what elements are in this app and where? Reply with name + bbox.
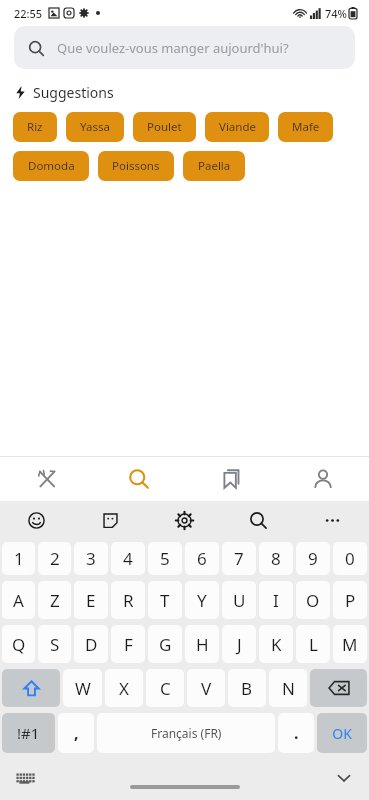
staticText: O	[306, 589, 320, 612]
button[interactable]: Search keyboard	[221, 501, 295, 539]
button[interactable]: Profile	[277, 457, 369, 501]
button[interactable]: Shift	[2, 669, 60, 707]
button[interactable]: !#1	[2, 713, 55, 753]
button[interactable]: 7	[222, 542, 256, 575]
staticText: W	[75, 677, 91, 700]
button[interactable]: OK	[317, 713, 367, 753]
button[interactable]: Domoda	[13, 151, 89, 181]
button[interactable]: D	[74, 625, 108, 663]
staticText: H	[196, 633, 209, 656]
staticText: L	[309, 633, 318, 656]
staticText: A	[13, 589, 24, 612]
staticText: OK	[332, 724, 352, 743]
button[interactable]: .	[278, 713, 314, 753]
staticText: 74%	[325, 6, 347, 21]
button[interactable]: ,	[58, 713, 94, 753]
button[interactable]: P	[333, 581, 367, 619]
staticText: 2	[50, 547, 60, 570]
staticText: U	[233, 589, 246, 612]
staticText: D	[85, 633, 98, 656]
button[interactable]: N	[269, 669, 307, 707]
staticText: N	[282, 677, 295, 700]
staticText: S	[50, 633, 60, 656]
staticText: 6	[197, 547, 207, 570]
button[interactable]: B	[228, 669, 266, 707]
button[interactable]: Viande	[205, 112, 269, 142]
button[interactable]: Z	[38, 581, 71, 619]
button[interactable]: 3	[74, 542, 108, 575]
button[interactable]: Yassa	[66, 112, 124, 142]
button[interactable]: 2	[38, 542, 71, 575]
button[interactable]: Settings	[147, 501, 221, 539]
staticText: E	[86, 589, 96, 612]
button[interactable]: S	[38, 625, 71, 663]
button[interactable]: G	[148, 625, 182, 663]
staticText: 9	[308, 547, 318, 570]
button[interactable]: Restaurants	[0, 457, 93, 501]
button[interactable]: Mafe	[278, 112, 333, 142]
button[interactable]: M	[333, 625, 367, 663]
staticText: Q	[12, 633, 26, 656]
button[interactable]: T	[148, 581, 182, 619]
button[interactable]: I	[259, 581, 293, 619]
button[interactable]: Bookmarks	[185, 457, 277, 501]
button[interactable]: Keyboard layout	[10, 763, 40, 793]
button[interactable]: H	[185, 625, 219, 663]
button[interactable]: Riz	[13, 112, 57, 142]
staticText: Que voulez-vous manger aujourd'hui?	[57, 39, 289, 57]
button[interactable]: Poissons	[98, 151, 174, 181]
button[interactable]: Paella	[183, 151, 245, 181]
button[interactable]: Poulet	[133, 112, 196, 142]
staticText: K	[271, 633, 282, 656]
button[interactable]: Q	[2, 625, 35, 663]
staticText: Y	[197, 589, 207, 612]
button[interactable]: More options	[295, 501, 369, 539]
button[interactable]: F	[111, 625, 145, 663]
staticText: Poissons	[112, 158, 160, 174]
staticText: 0	[345, 547, 355, 570]
staticText: 8	[271, 547, 281, 570]
button[interactable]: O	[296, 581, 330, 619]
staticText: 4	[123, 547, 133, 570]
button[interactable]: X	[105, 669, 143, 707]
button[interactable]: Backspace	[310, 669, 367, 707]
staticText: J	[237, 633, 242, 656]
button[interactable]: 5	[148, 542, 182, 575]
button[interactable]: 6	[185, 542, 219, 575]
staticText: 3	[86, 547, 96, 570]
button[interactable]: V	[187, 669, 225, 707]
staticText: Viande	[219, 119, 256, 135]
button[interactable]: Y	[185, 581, 219, 619]
button[interactable]: A	[2, 581, 35, 619]
staticText: Domoda	[28, 158, 75, 174]
button[interactable]: Emoji	[0, 501, 73, 539]
button[interactable]: Hide keyboard	[329, 763, 359, 793]
staticText: F	[124, 633, 133, 656]
button[interactable]: 9	[296, 542, 330, 575]
staticText: T	[160, 589, 170, 612]
button[interactable]: L	[296, 625, 330, 663]
button[interactable]: Que voulez-vous manger aujourd'hui?	[14, 26, 355, 69]
button[interactable]: W	[63, 669, 102, 707]
button[interactable]: Search	[93, 457, 185, 501]
staticText: G	[159, 633, 172, 656]
staticText: B	[241, 677, 253, 700]
button[interactable]: 4	[111, 542, 145, 575]
button[interactable]: R	[111, 581, 145, 619]
staticText: C	[160, 677, 171, 700]
button[interactable]: U	[222, 581, 256, 619]
button[interactable]: 0	[333, 542, 367, 575]
button[interactable]: E	[74, 581, 108, 619]
button[interactable]: K	[259, 625, 293, 663]
staticText: !#1	[17, 723, 40, 743]
button[interactable]: C	[146, 669, 184, 707]
button[interactable]: 1	[2, 542, 35, 575]
button[interactable]: Stickers	[73, 501, 147, 539]
staticText: Yassa	[80, 119, 110, 135]
staticText: Riz	[27, 119, 43, 135]
staticText: Mafe	[292, 119, 320, 135]
button[interactable]: 8	[259, 542, 293, 575]
button[interactable]: J	[222, 625, 256, 663]
button[interactable]: Français (FR)	[97, 713, 275, 753]
staticText: Z	[50, 589, 60, 612]
